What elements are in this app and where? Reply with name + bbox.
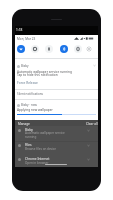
button[interactable]: Do not disturb	[31, 45, 39, 53]
button[interactable]: Expand notification	[93, 64, 96, 67]
button[interactable]	[15, 100, 98, 118]
staticText: Bixby	[21, 64, 29, 68]
staticText: Silent notifications	[17, 92, 44, 96]
button[interactable]: Auto-rotate	[74, 45, 82, 53]
button[interactable]: Manage	[18, 122, 30, 126]
button[interactable]	[15, 142, 98, 156]
button[interactable]	[15, 156, 98, 167]
staticText: Bixby	[25, 128, 33, 132]
button[interactable]: Wi-Fi	[17, 45, 25, 53]
staticText: Bixby · now	[21, 103, 37, 107]
staticText: Browse files on device	[25, 147, 56, 151]
staticText: Clear all	[86, 122, 98, 126]
button[interactable]: Edit tiles	[85, 45, 93, 53]
staticText: Mon, Mar 23	[17, 37, 36, 41]
button[interactable]: Clear all	[86, 122, 98, 126]
staticText: Applying new wallpaper	[17, 108, 53, 112]
staticText: Chrome Internet	[25, 157, 50, 161]
button[interactable]: Expand	[87, 158, 90, 161]
staticText: Automatic wallpaper service	[25, 131, 65, 135]
staticText: Open in browser	[25, 161, 49, 165]
staticText: running	[25, 135, 37, 139]
staticText: Manage	[18, 122, 30, 126]
button[interactable]: Flashlight	[45, 45, 53, 53]
staticText: Force Release	[17, 81, 38, 85]
button[interactable]: Expand	[87, 144, 90, 147]
staticText: Tap to hide this notification	[17, 73, 58, 77]
button[interactable]	[15, 126, 98, 141]
button[interactable]: Force Release	[17, 81, 38, 85]
button[interactable]: Expand	[87, 129, 90, 132]
staticText: Files	[25, 143, 32, 147]
staticText: Automatic wallpaper service running	[17, 70, 72, 74]
button[interactable]: Bluetooth	[60, 45, 68, 53]
staticText: 1:18	[16, 28, 23, 32]
button[interactable]	[15, 59, 98, 89]
